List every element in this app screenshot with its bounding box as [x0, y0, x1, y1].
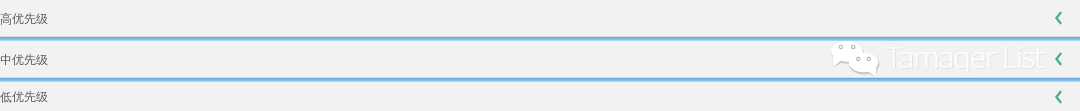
staticText: 中优先级	[0, 52, 48, 67]
staticText: 低优先级	[0, 89, 48, 104]
button[interactable]: 中优先级	[0, 41, 1080, 77]
staticText: Tamager List	[886, 41, 1044, 72]
other: Expand	[1052, 51, 1066, 67]
other: Expand	[1052, 10, 1066, 26]
other: Expand	[1052, 89, 1066, 105]
staticText: 高优先级	[0, 11, 48, 26]
button[interactable]: 低优先级	[0, 82, 1080, 111]
button[interactable]: 高优先级	[0, 0, 1080, 36]
staticText: Tamager List	[887, 41, 1045, 73]
